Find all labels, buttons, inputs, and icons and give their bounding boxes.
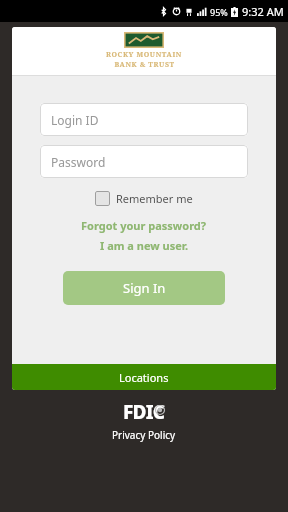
- staticText: 95%: [210, 6, 228, 18]
- staticText: ROCKY MOUNTAIN: [106, 50, 182, 60]
- button[interactable]: I am a new user.: [100, 238, 189, 253]
- staticText: Sign In: [123, 279, 166, 297]
- button[interactable]: Sign In: [63, 271, 225, 305]
- staticText: Locations: [119, 370, 169, 385]
- button[interactable]: Privacy Policy: [112, 428, 176, 442]
- button[interactable]: Login ID: [40, 103, 248, 136]
- staticText: Forgot your password?: [81, 218, 207, 233]
- staticText: Password: [51, 154, 106, 170]
- staticText: Login ID: [51, 112, 99, 128]
- staticText: FDIC: [123, 399, 165, 425]
- staticText: Remember me: [116, 191, 193, 206]
- button[interactable]: Locations: [12, 364, 276, 390]
- staticText: I am a new user.: [100, 238, 189, 253]
- button[interactable]: Remember me: [95, 191, 193, 206]
- staticText: 9:32 AM: [242, 4, 284, 19]
- button[interactable]: Forgot your password?: [81, 218, 207, 233]
- staticText: Privacy Policy: [112, 428, 176, 442]
- other: FDIC: [123, 399, 165, 425]
- staticText: BANK & TRUST: [114, 60, 175, 70]
- button[interactable]: Password: [40, 145, 248, 178]
